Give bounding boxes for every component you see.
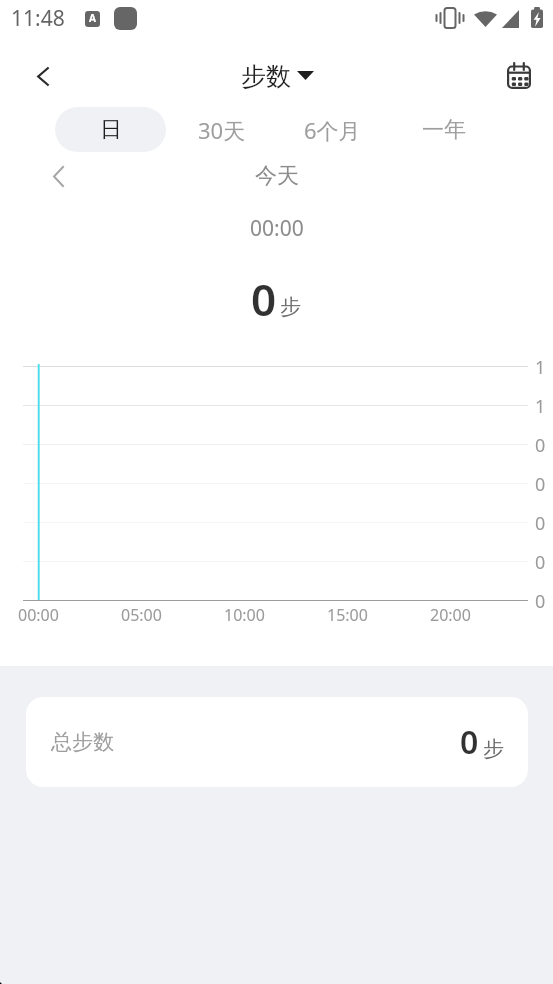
staticText: 1 — [535, 355, 546, 380]
staticText: 0 — [535, 550, 546, 575]
staticText: 0 — [460, 720, 479, 764]
staticText: 15:00 — [327, 604, 368, 626]
button[interactable]: 步数 — [241, 61, 314, 92]
staticText: 0 — [535, 511, 546, 536]
button[interactable]: 一年 — [388, 107, 499, 152]
staticText: 步数 — [241, 61, 291, 92]
button[interactable]: 日 — [55, 107, 166, 152]
button[interactable]: 30天 — [166, 107, 277, 152]
staticText: 一年 — [422, 116, 466, 144]
staticText: 日 — [100, 116, 122, 144]
button[interactable]: 总步数 — [26, 697, 528, 787]
staticText: 1 — [535, 394, 546, 419]
staticText: 6个月 — [304, 115, 361, 145]
staticText: 0 — [535, 433, 546, 458]
staticText: 10:00 — [224, 604, 265, 626]
staticText: 今天 — [255, 162, 299, 190]
staticText: 00:00 — [18, 604, 59, 626]
staticText: A — [89, 11, 96, 25]
button[interactable]: Previous day — [40, 158, 76, 194]
staticText: 总步数 — [51, 729, 114, 755]
staticText: 0 — [535, 589, 546, 614]
staticText: 11:48 — [11, 4, 65, 33]
button[interactable]: 6个月 — [277, 107, 388, 152]
staticText: 0 — [251, 269, 277, 329]
staticText: 步 — [280, 294, 301, 320]
staticText: 步 — [483, 736, 504, 762]
staticText: 00:00 — [250, 214, 304, 243]
staticText: 20:00 — [430, 604, 471, 626]
button[interactable]: Back — [21, 55, 63, 97]
staticText: 30天 — [198, 115, 246, 145]
staticText: 05:00 — [121, 604, 162, 626]
staticText: 0 — [535, 472, 546, 497]
button[interactable]: Calendar — [498, 55, 540, 97]
